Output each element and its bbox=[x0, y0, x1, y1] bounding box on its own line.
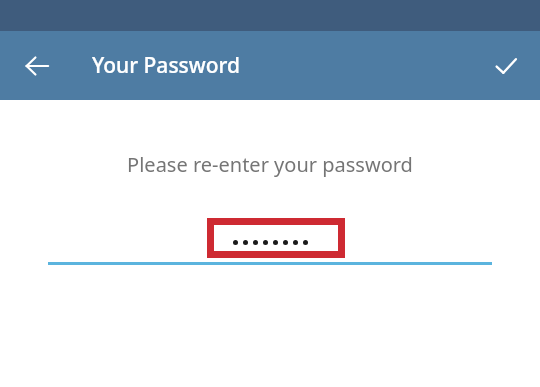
button[interactable]: Back bbox=[13, 42, 61, 90]
staticText: Please re-enter your password bbox=[0, 151, 540, 178]
button[interactable]: Confirm bbox=[482, 42, 530, 90]
staticText: Your Password bbox=[92, 51, 241, 80]
button[interactable]: Password field bbox=[48, 225, 492, 265]
